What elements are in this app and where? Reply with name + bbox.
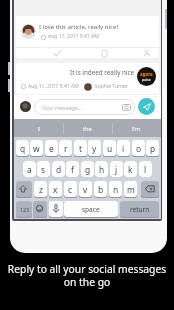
staticText: p [150,143,156,154]
staticText: w [33,143,40,154]
staticText: c [68,184,73,195]
button[interactable]: z [34,181,47,197]
staticText: h [99,164,105,175]
button[interactable]: r [59,140,72,156]
staticText: t [79,143,83,154]
staticText: f [71,164,74,175]
staticText: s [41,164,46,175]
button[interactable]: b [94,181,107,197]
staticText: pulse [142,77,151,82]
staticText: r [64,143,68,154]
button[interactable]: x [49,181,62,197]
button[interactable]: the [63,119,112,137]
staticText: k [128,164,133,175]
button[interactable] [138,98,155,115]
button[interactable]: return [120,201,159,217]
button[interactable]: i [117,140,130,156]
button[interactable]: space [64,201,118,217]
staticText: x [53,184,58,195]
staticText: Aug 11, 2017 5:41 AM [48,33,99,40]
staticText: Aug 11, 2017 5:41 AM [28,83,79,90]
button[interactable]: h [95,161,108,177]
button[interactable]: u [103,140,116,156]
button[interactable]: k [124,161,137,177]
staticText: space [82,205,100,214]
button[interactable]: o [132,140,145,156]
staticText: q [20,143,26,154]
staticText: return [130,205,150,214]
staticText: d [56,164,62,175]
button[interactable]: v [79,181,92,197]
button[interactable]: d [52,161,65,177]
button[interactable] [49,201,63,217]
staticText: the [83,125,92,132]
button[interactable]: a [23,161,36,177]
staticText: I love this article, really nice! [39,23,118,31]
staticText: n [113,184,119,195]
button[interactable]: g [81,161,94,177]
button[interactable]: q [16,140,29,156]
button[interactable]: l [139,161,152,177]
staticText: v [83,184,88,195]
button[interactable]: c [64,181,77,197]
button[interactable]: s [37,161,50,177]
button[interactable]: w [30,140,43,156]
staticText: z [39,184,43,195]
staticText: Your message... [42,104,82,111]
button[interactable]: I love this article, really nice! [16,16,159,58]
button[interactable]: n [109,181,122,197]
button[interactable] [16,181,32,197]
staticText: I'm [132,125,141,132]
staticText: a [27,164,32,175]
staticText: agora [140,71,153,77]
staticText: e [49,143,54,154]
button[interactable]: I'm [112,119,161,137]
staticText: g [85,164,91,175]
staticText: on the go [0,275,174,289]
staticText: Reply to all your social messages [0,262,174,276]
button[interactable]: t [74,140,87,156]
button[interactable]: y [88,140,101,156]
staticText: j [115,164,118,175]
staticText: I [38,125,40,132]
button[interactable]: f [66,161,79,177]
staticText: 123 [20,206,29,213]
staticText: It is indeed really nice [70,68,135,77]
button[interactable]: p [146,140,159,156]
staticText: y [92,143,97,154]
staticText: u [107,143,113,154]
button[interactable]: I [14,119,63,137]
button[interactable] [33,201,47,217]
button[interactable]: m [124,181,137,197]
staticText: m [127,184,135,195]
staticText: o [136,143,142,154]
button[interactable]: Your message... [34,99,135,115]
button[interactable] [141,181,159,197]
staticText: b [98,184,104,195]
staticText: i [122,143,125,154]
button[interactable]: j [110,161,123,177]
button[interactable]: 123 [16,201,32,217]
button[interactable]: e [45,140,58,156]
staticText: Sophie Turner [95,83,129,90]
button[interactable]: It is indeed really nice [16,63,159,94]
staticText: l [144,164,147,175]
